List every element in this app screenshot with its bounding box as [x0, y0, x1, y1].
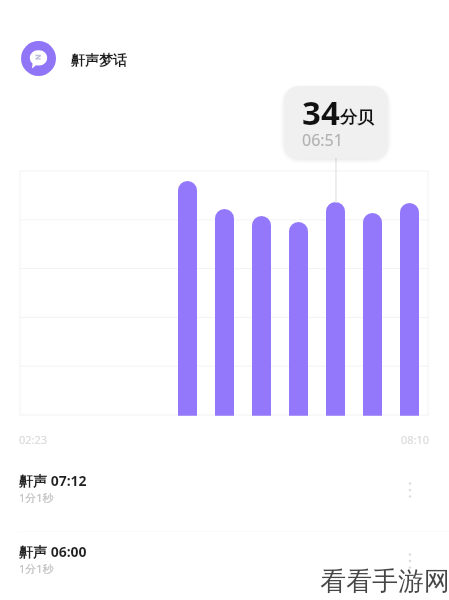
button[interactable]: More options — [397, 477, 423, 503]
staticText: 分贝 — [340, 107, 374, 128]
staticText: 06:51 — [302, 129, 343, 151]
button[interactable]: More options — [397, 548, 423, 574]
staticText: 鼾声 07:12 — [19, 471, 87, 490]
staticText: 看看手游网 — [320, 565, 449, 598]
staticText: 34 — [302, 90, 340, 135]
staticText: 1分1秒 — [19, 490, 54, 505]
button[interactable]: 34 — [284, 86, 388, 158]
button[interactable]: 鼾声 06:00 — [0, 532, 449, 600]
button[interactable]: Snore and sleep talk — [21, 41, 56, 76]
staticText: 鼾声梦话 — [71, 52, 127, 70]
staticText: 08:10 — [401, 432, 430, 447]
staticText: 02:23 — [19, 432, 48, 447]
staticText: 1分1秒 — [19, 561, 54, 576]
button[interactable]: 鼾声 07:12 — [0, 461, 449, 531]
staticText: 鼾声 06:00 — [19, 542, 87, 561]
